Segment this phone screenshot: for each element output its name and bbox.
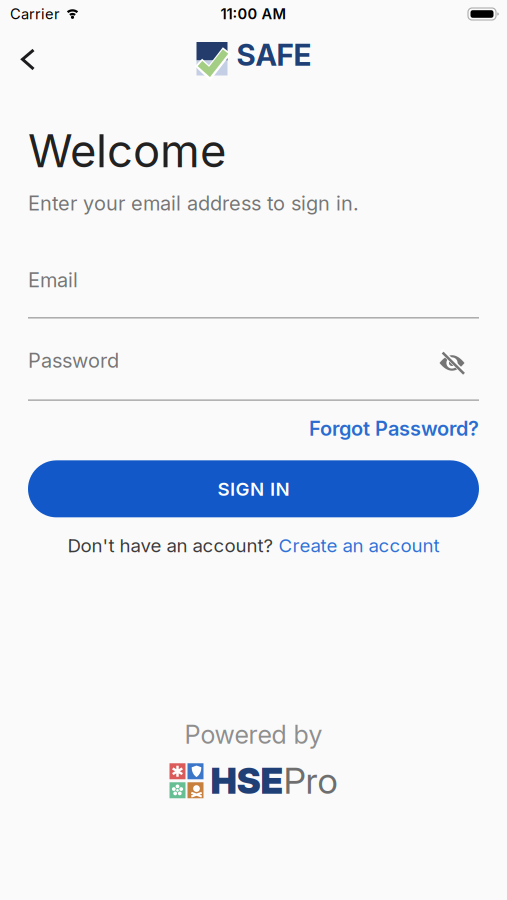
staticText: Powered by — [184, 720, 322, 749]
staticText: Carrier — [10, 5, 60, 23]
button[interactable]: Don't have an account? — [67, 534, 439, 556]
staticText: Password — [28, 349, 119, 372]
staticText: Email — [28, 268, 78, 292]
staticText: Welcome — [28, 124, 226, 177]
button[interactable]: Password — [28, 349, 119, 372]
button[interactable]: Email — [28, 268, 479, 318]
staticText: HSE — [210, 759, 283, 802]
staticText: Forgot Password? — [309, 417, 479, 440]
staticText: Don't have an account? — [67, 534, 278, 556]
staticText: Create an account — [278, 534, 439, 556]
staticText: Enter your email address to sign in. — [28, 191, 359, 215]
button[interactable]: Forgot Password? — [309, 417, 479, 440]
button[interactable]: SAFE — [195, 38, 311, 73]
button[interactable]: SIGN IN — [28, 460, 479, 517]
staticText: Pro — [283, 759, 337, 802]
button[interactable] — [438, 347, 479, 373]
staticText: SAFE — [236, 38, 311, 72]
staticText: SIGN IN — [217, 478, 289, 500]
staticText: 11:00 AM — [220, 5, 286, 23]
button[interactable] — [0, 35, 36, 77]
